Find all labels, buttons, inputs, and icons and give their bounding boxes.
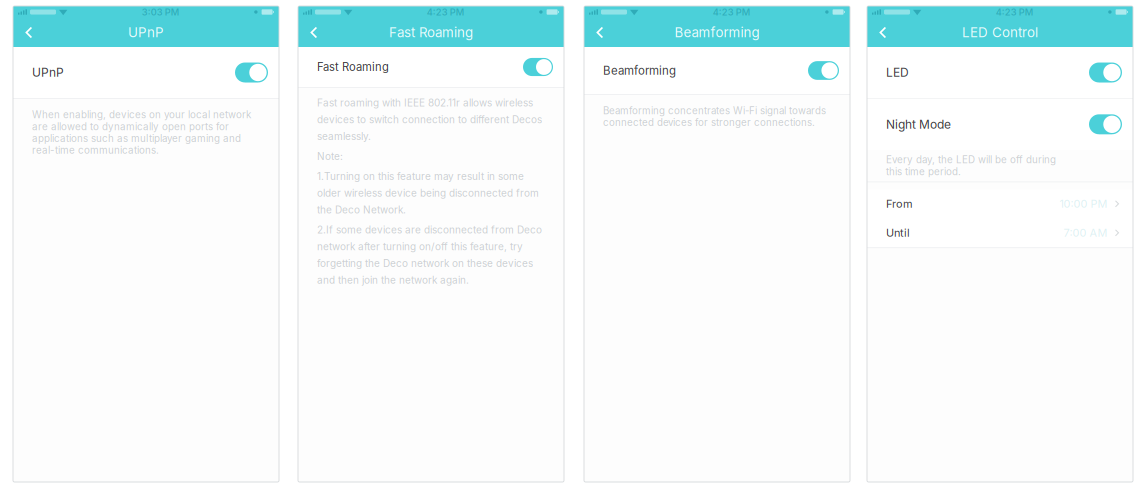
staticText: Until (886, 226, 910, 239)
staticText: 1.Turning on this feature may result in … (317, 170, 539, 216)
button[interactable]: Until (867, 218, 1133, 247)
staticText: When enabling, devices on your local net… (32, 109, 251, 156)
staticText: UPnP (128, 24, 164, 40)
staticText: Night Mode (886, 117, 951, 131)
staticText: Every day, the LED will be off during th… (886, 154, 1056, 177)
staticText: 4:23 PM (713, 6, 751, 18)
staticText: Note: (317, 150, 343, 162)
button[interactable]: From (867, 189, 1133, 218)
button[interactable]: Back (867, 18, 899, 47)
button[interactable]: UPnP (13, 47, 279, 98)
staticText: 2.If some devices are disconnected from … (317, 224, 542, 286)
staticText: Beamforming (674, 24, 759, 40)
button[interactable]: Back (13, 18, 45, 47)
staticText: UPnP (32, 65, 64, 80)
staticText: 3:03 PM (142, 6, 180, 18)
staticText: 4:23 PM (996, 6, 1034, 18)
staticText: 7:00 AM (1063, 226, 1107, 239)
staticText: 4:23 PM (427, 6, 465, 18)
button[interactable]: Back (584, 18, 616, 47)
staticText: Beamforming concentrates Wi-Fi signal to… (603, 105, 826, 128)
button[interactable]: LED (867, 47, 1133, 98)
staticText: 10:00 PM (1059, 197, 1107, 210)
staticText: LED Control (962, 24, 1038, 40)
staticText: Fast Roaming (317, 60, 389, 74)
button[interactable]: Fast Roaming (298, 47, 564, 87)
staticText: From (886, 197, 913, 210)
staticText: LED (886, 65, 909, 80)
staticText: Fast roaming with IEEE 802.11r allows wi… (317, 97, 542, 142)
button[interactable]: Beamforming (584, 47, 850, 94)
button[interactable]: Night Mode (867, 99, 1133, 150)
button[interactable]: Back (298, 18, 330, 47)
staticText: Beamforming (603, 64, 676, 77)
staticText: Fast Roaming (389, 24, 473, 40)
